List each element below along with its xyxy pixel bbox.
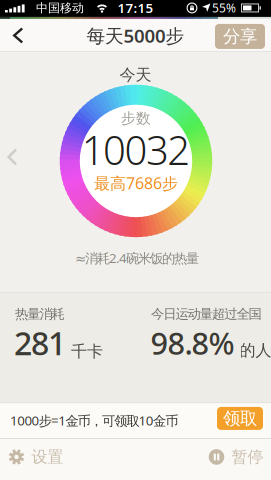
staticText: 暂停 xyxy=(231,447,263,467)
staticText: 1000步=1金币，可领取10金币 xyxy=(10,412,178,429)
staticText: 98.8% xyxy=(150,323,234,363)
staticText: 步数 xyxy=(121,109,151,127)
button[interactable]: 分享 xyxy=(215,24,265,49)
staticText: 分享 xyxy=(223,26,257,47)
staticText: 中国移动 xyxy=(36,1,84,15)
button[interactable]: Back xyxy=(5,19,32,51)
staticText: 千卡 xyxy=(71,341,103,361)
button[interactable]: 暂停 xyxy=(208,441,263,473)
staticText: ≈消耗2.4碗米饭的热量 xyxy=(75,249,199,267)
staticText: 最高7686步 xyxy=(94,172,178,193)
staticText: 17:15 xyxy=(117,0,153,17)
staticText: 领取 xyxy=(223,408,257,429)
staticText: 281 xyxy=(14,322,66,364)
staticText: 55% xyxy=(212,0,236,16)
staticText: 设置 xyxy=(31,447,63,467)
button[interactable]: 领取 xyxy=(217,407,263,430)
staticText: 每天5000步 xyxy=(86,23,184,48)
staticText: 热量消耗 xyxy=(15,306,65,322)
staticText: 10032 xyxy=(82,123,190,176)
staticText: 今日运动量超过全国 xyxy=(151,306,262,322)
button[interactable]: Previous xyxy=(1,142,23,171)
staticText: 今天 xyxy=(119,65,151,85)
button[interactable]: 设置 xyxy=(8,441,63,473)
staticText: 的人 xyxy=(239,341,271,360)
